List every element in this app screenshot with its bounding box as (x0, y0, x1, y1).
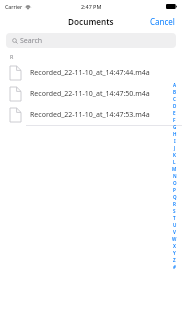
staticText: Recorded_22-11-10_at_14:47:53.m4a (30, 110, 150, 120)
staticText: H (173, 131, 177, 137)
button[interactable]: Cancel (143, 13, 182, 30)
staticText: W (172, 236, 177, 242)
staticText: M (172, 166, 177, 172)
staticText: Carrier (5, 3, 23, 10)
button[interactable]: Recorded_22-11-10_at_14:47:53.m4a (0, 104, 182, 125)
staticText: 2:47 PM (81, 3, 102, 10)
button[interactable]: Recorded_22-11-10_at_14:47:50.m4a (0, 83, 182, 104)
staticText: Search (20, 36, 43, 46)
staticText: E (173, 110, 176, 116)
button[interactable]: Search (6, 33, 176, 48)
staticText: V (173, 229, 176, 235)
staticText: N (173, 173, 177, 179)
staticText: B (173, 89, 177, 95)
staticText: I (174, 138, 176, 144)
staticText: F (173, 117, 176, 123)
staticText: D (173, 103, 177, 109)
staticText: R (10, 53, 14, 60)
staticText: X (173, 243, 176, 249)
staticText: L (173, 159, 176, 165)
staticText: S (173, 208, 176, 214)
staticText: O (173, 180, 177, 186)
staticText: Recorded_22-11-10_at_14:47:44.m4a (30, 68, 150, 78)
staticText: T (173, 215, 176, 221)
button[interactable]: Recorded_22-11-10_at_14:47:44.m4a (0, 62, 182, 83)
staticText: Cancel (150, 16, 175, 27)
staticText: # (173, 264, 176, 270)
staticText: Q (173, 194, 177, 200)
staticText: Documents (68, 16, 114, 27)
staticText: Y (173, 250, 176, 256)
staticText: P (173, 187, 176, 193)
staticText: Z (173, 257, 176, 263)
staticText: R (173, 201, 176, 207)
staticText: J (174, 145, 176, 151)
staticText: A (173, 82, 177, 88)
staticText: Recorded_22-11-10_at_14:47:50.m4a (30, 89, 150, 99)
staticText: U (173, 222, 177, 228)
staticText: G (173, 124, 177, 130)
button[interactable]: Alphabet index (170, 82, 179, 270)
staticText: K (173, 152, 176, 158)
staticText: C (173, 96, 176, 102)
